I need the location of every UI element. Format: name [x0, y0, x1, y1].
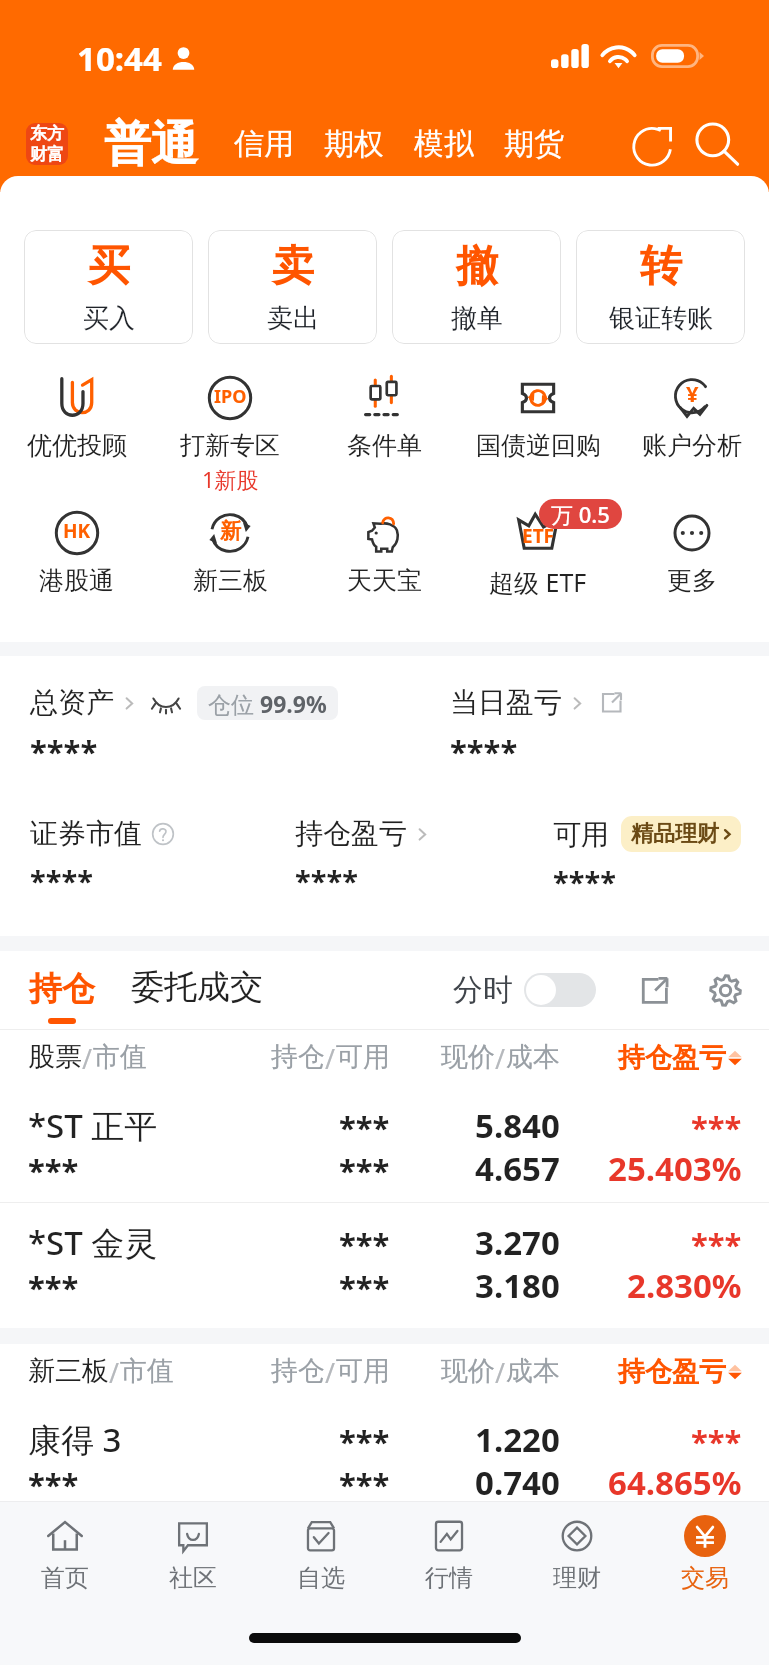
staticText: 卖: [272, 240, 314, 293]
staticText: 99.9%: [260, 688, 327, 719]
staticText: /: [495, 1354, 506, 1391]
button[interactable]: 更多: [615, 479, 769, 614]
button[interactable]: 证券市值: [30, 816, 175, 851]
staticText: ***: [28, 1149, 79, 1191]
staticText: 市值: [120, 1354, 174, 1388]
button[interactable]: Expand: [634, 970, 674, 1010]
staticText: 转: [640, 240, 682, 293]
staticText: /: [109, 1354, 120, 1391]
staticText: 持仓盈亏: [618, 1041, 726, 1075]
staticText: 财富: [30, 144, 64, 165]
staticText: ***: [691, 1420, 742, 1462]
button[interactable]: 持仓盈亏: [295, 816, 432, 851]
button[interactable]: 精品理财: [621, 816, 741, 852]
staticText: 普通: [104, 115, 198, 174]
staticText: 2.830%: [627, 1263, 742, 1308]
staticText: 1.220: [475, 1417, 560, 1462]
staticText: 撤: [456, 240, 498, 293]
staticText: 持仓: [29, 968, 95, 1010]
staticText: ***: [339, 1223, 390, 1265]
button[interactable]: 行情: [385, 1502, 513, 1602]
button[interactable]: 社区: [129, 1502, 257, 1602]
button[interactable]: ¥: [615, 344, 769, 479]
button[interactable]: 信用: [219, 125, 309, 163]
button[interactable]: Search: [687, 115, 745, 173]
staticText: 打新专区: [180, 430, 280, 461]
button[interactable]: 国债逆回购: [461, 344, 615, 479]
staticText: 现价: [441, 1040, 495, 1074]
button[interactable]: HK: [0, 479, 153, 614]
button[interactable]: 康得 3: [0, 1400, 769, 1516]
button[interactable]: 持仓: [29, 968, 95, 1024]
button[interactable]: Settings: [705, 970, 745, 1010]
staticText: 期权: [324, 125, 384, 163]
staticText: 3.270: [475, 1220, 560, 1265]
staticText: ***: [339, 1266, 390, 1308]
staticText: 持仓盈亏: [295, 816, 407, 851]
staticText: 1新股: [202, 464, 259, 494]
button[interactable]: 持仓盈亏: [618, 1041, 744, 1075]
staticText: ***: [339, 1420, 390, 1462]
button[interactable]: 天天宝: [307, 479, 461, 614]
staticText: 3.180: [475, 1263, 560, 1308]
staticText: ***: [339, 1149, 390, 1191]
button[interactable]: 理财: [513, 1502, 641, 1602]
button[interactable]: 首页: [0, 1502, 129, 1602]
staticText: 总资产: [30, 685, 114, 720]
button[interactable]: 当日盈亏: [450, 685, 624, 720]
button[interactable]: ETF: [461, 479, 615, 614]
staticText: IPO: [214, 384, 247, 409]
button[interactable]: 新: [153, 479, 307, 614]
staticText: ****: [30, 861, 93, 900]
staticText: /: [325, 1354, 336, 1391]
button[interactable]: 总资产: [30, 685, 338, 720]
staticText: 0.740: [475, 1460, 560, 1505]
button[interactable]: 转: [576, 230, 745, 344]
button[interactable]: 自选: [257, 1502, 385, 1602]
button[interactable]: 普通: [104, 115, 198, 174]
button[interactable]: 持仓盈亏: [618, 1355, 744, 1389]
staticText: 精品理财: [631, 820, 719, 848]
staticText: *ST 正平: [28, 1103, 158, 1148]
staticText: 东方: [30, 123, 64, 144]
button[interactable]: IPO: [153, 344, 307, 479]
staticText: 模拟: [414, 125, 474, 163]
staticText: HK: [63, 518, 91, 544]
staticText: 分时: [453, 971, 513, 1009]
staticText: /: [495, 1040, 506, 1077]
staticText: 期货: [504, 125, 564, 163]
button[interactable]: 分时: [453, 971, 596, 1009]
staticText: ****: [450, 730, 518, 772]
button[interactable]: 买: [24, 230, 193, 344]
staticText: 可用: [336, 1040, 390, 1074]
button[interactable]: 东方财富: [26, 123, 68, 165]
staticText: 港股通: [39, 565, 114, 596]
staticText: 5.840: [475, 1103, 560, 1148]
button[interactable]: 卖: [208, 230, 377, 344]
staticText: ETF: [522, 523, 555, 549]
button[interactable]: 期权: [309, 125, 399, 163]
button[interactable]: 委托成交: [131, 966, 263, 1008]
staticText: 买: [88, 240, 130, 293]
button[interactable]: *ST 正平: [0, 1086, 769, 1202]
staticText: 市值: [93, 1040, 147, 1074]
staticText: 当日盈亏: [450, 685, 562, 720]
staticText: 撤单: [451, 302, 503, 335]
staticText: 新: [220, 518, 241, 544]
staticText: 国债逆回购: [476, 430, 601, 461]
staticText: 现价: [441, 1354, 495, 1388]
staticText: 天天宝: [347, 565, 422, 596]
button[interactable]: 优优投顾: [0, 344, 153, 479]
button[interactable]: 条件单: [307, 344, 461, 479]
button[interactable]: 撤: [392, 230, 561, 344]
button[interactable]: 交易: [641, 1502, 769, 1602]
button[interactable]: *ST 金灵: [0, 1203, 769, 1328]
button[interactable]: Refresh: [625, 115, 683, 173]
staticText: 信用: [234, 125, 294, 163]
staticText: ****: [295, 861, 358, 900]
staticText: ***: [691, 1223, 742, 1265]
button[interactable]: 模拟: [399, 125, 489, 163]
staticText: 新三板: [193, 565, 268, 596]
button[interactable]: 期货: [489, 125, 579, 163]
staticText: 优优投顾: [27, 430, 127, 461]
